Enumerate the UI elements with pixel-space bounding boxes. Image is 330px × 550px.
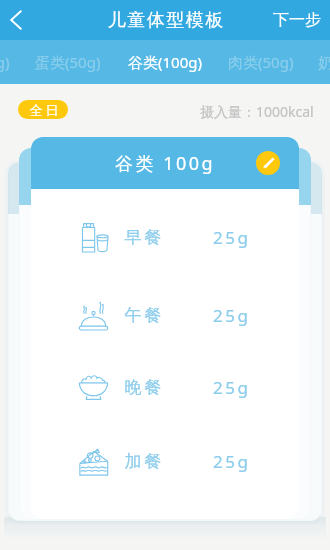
staticText: 加餐 [123,451,163,472]
staticText: 早餐 [123,227,163,248]
staticText: 全日 [28,102,60,118]
button[interactable]: Edit [256,151,280,175]
button[interactable]: 谷类(100g) [128,40,202,84]
staticText: 儿童体型模板 [107,9,224,32]
button[interactable]: 奶类(100g) [318,40,330,84]
staticText: 谷类(100g) [128,52,202,72]
button[interactable]: 蛋类(50g) [35,40,101,84]
staticText: 25g [213,226,251,249]
button[interactable]: 晚餐 [31,368,299,406]
staticText: 蛋类(50g) [35,52,101,72]
button[interactable]: 肉类(50g) [228,40,294,84]
button[interactable]: 加餐 [31,442,299,480]
staticText: 奶类(100g) [318,52,330,72]
staticText: 午餐 [123,305,163,326]
button[interactable]: 全日 [18,100,68,119]
button[interactable]: 午餐 [31,296,299,334]
staticText: 摄入量：1000kcal [200,102,314,121]
staticText: 25g [213,376,251,399]
staticText: 25g [213,304,251,327]
staticText: 肉类(50g) [228,52,294,72]
button[interactable]: Back [0,0,32,40]
button[interactable]: (50g) [0,40,10,84]
staticText: 下一步 [273,10,321,30]
button[interactable]: 早餐 [31,218,299,256]
staticText: (50g) [0,52,10,72]
staticText: 25g [213,450,251,473]
button[interactable]: 下一步 [263,0,330,40]
staticText: 谷类 100g [115,151,216,176]
staticText: 晚餐 [123,377,163,398]
